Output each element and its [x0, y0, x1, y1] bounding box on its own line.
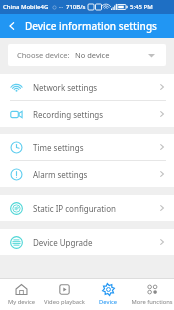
staticText: Alarm settings: [33, 169, 88, 180]
button[interactable]: Recording settings: [0, 101, 174, 127]
staticText: Network settings: [33, 82, 98, 93]
staticText: Static IP configuration: [33, 203, 116, 214]
button[interactable]: Alarm settings: [0, 161, 174, 187]
button[interactable]: More functions: [130, 279, 174, 310]
button[interactable]: Time settings: [0, 134, 174, 160]
button[interactable]: Back: [0, 14, 24, 38]
staticText: Recording settings: [33, 109, 104, 120]
staticText: 5:45 PM: [130, 3, 153, 11]
button[interactable]: Device: [86, 279, 130, 310]
staticText: My device: [8, 298, 35, 306]
staticText: ···: [59, 4, 64, 11]
staticText: Device information settings: [25, 19, 157, 33]
button[interactable]: Device Upgrade: [0, 229, 174, 255]
staticText: 710B/s: [66, 3, 86, 11]
button[interactable]: Static IP configuration: [0, 195, 174, 221]
staticText: Time settings: [33, 142, 84, 153]
button[interactable]: Network settings: [0, 74, 174, 100]
staticText: No device: [75, 50, 110, 60]
staticText: Device: [99, 298, 117, 306]
button[interactable]: Choose device:: [8, 44, 166, 66]
staticText: Video playback: [44, 298, 85, 306]
staticText: Choose device:: [17, 50, 70, 60]
button[interactable]: Video playback: [43, 279, 86, 310]
staticText: More functions: [131, 298, 173, 306]
staticText: Device Upgrade: [33, 237, 93, 248]
staticText: China Mobile4G: [3, 3, 49, 11]
button[interactable]: My device: [0, 279, 43, 310]
